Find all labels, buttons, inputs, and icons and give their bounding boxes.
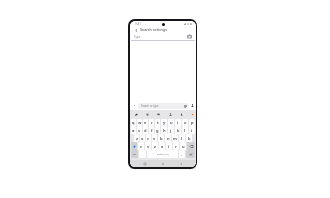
button[interactable]: Clipboard: [156, 112, 161, 117]
staticText: z: [154, 144, 156, 149]
staticText: e: [144, 120, 147, 125]
staticText: x: [141, 136, 144, 141]
button[interactable]: Settings: [179, 112, 184, 117]
staticText: g: [156, 128, 159, 133]
staticText: q: [132, 120, 135, 125]
button[interactable]: e: [143, 119, 148, 126]
button[interactable]: Search by image: [187, 34, 192, 39]
button[interactable]: More options: [191, 104, 194, 107]
button[interactable]: k: [186, 134, 192, 142]
button[interactable]: c: [138, 142, 144, 150]
staticText: h: [163, 128, 166, 133]
button[interactable]: g: [155, 126, 160, 134]
staticText: k: [188, 136, 191, 141]
staticText: Search or type: [141, 104, 159, 108]
button[interactable]: i: [166, 142, 172, 150]
button[interactable]: v: [152, 134, 157, 142]
staticText: i: [177, 120, 179, 125]
button[interactable]: x: [159, 142, 165, 150]
button[interactable]: r: [149, 119, 154, 126]
staticText: c: [147, 136, 150, 141]
staticText: l: [184, 128, 186, 133]
button[interactable]: n: [165, 134, 171, 142]
button[interactable]: x: [140, 134, 145, 142]
button[interactable]: More: [190, 112, 195, 117]
staticText: k: [177, 128, 180, 133]
button[interactable]: m: [172, 134, 178, 142]
button[interactable]: z: [152, 142, 158, 150]
staticText: t: [157, 120, 159, 125]
button[interactable]: Enter: [186, 150, 195, 158]
staticText: d: [144, 128, 147, 133]
staticText: 9:41: [135, 22, 141, 26]
staticText: c: [140, 144, 143, 149]
staticText: r: [175, 144, 177, 149]
staticText: r: [151, 120, 153, 125]
staticText: j: [170, 128, 172, 133]
staticText: u: [170, 120, 173, 125]
staticText: i: [191, 128, 193, 133]
button[interactable]: Search or type: [138, 103, 189, 109]
button[interactable]: r: [173, 142, 179, 150]
button[interactable]: p: [189, 119, 195, 126]
button[interactable]: Voice input: [168, 112, 173, 117]
staticText: p: [191, 120, 194, 125]
button[interactable]: d: [143, 126, 148, 134]
staticText: y: [163, 120, 166, 125]
button[interactable]: b: [158, 134, 164, 142]
button[interactable]: l: [179, 134, 185, 142]
staticText: !#1: [133, 153, 137, 156]
staticText: a: [132, 128, 135, 133]
button[interactable]: o: [182, 119, 188, 126]
staticText: i: [168, 144, 170, 149]
button[interactable]: Stickers: [134, 112, 139, 117]
button[interactable]: Space: [147, 150, 178, 158]
button[interactable]: a: [131, 126, 136, 134]
staticText: z: [136, 136, 138, 141]
button[interactable]: i: [175, 119, 181, 126]
button[interactable]: u: [180, 142, 186, 150]
button[interactable]: Translate: [145, 112, 150, 117]
staticText: x: [161, 144, 164, 149]
staticText: v: [147, 144, 150, 149]
staticText: o: [184, 120, 187, 125]
button[interactable]: u: [168, 119, 174, 126]
button[interactable]: y: [161, 119, 167, 126]
button[interactable]: j: [168, 126, 174, 134]
button[interactable]: v: [145, 142, 151, 150]
staticText: l: [181, 136, 183, 141]
button[interactable]: t: [155, 119, 160, 126]
staticText: s: [138, 128, 141, 133]
button[interactable]: Backspace: [187, 142, 195, 150]
button[interactable]: l: [182, 126, 188, 134]
staticText: Type: [134, 35, 141, 39]
button[interactable]: Recent apps: [142, 161, 148, 167]
button[interactable]: Back: [178, 161, 184, 167]
button[interactable]: f: [149, 126, 154, 134]
staticText: v: [153, 136, 156, 141]
button[interactable]: s: [137, 126, 142, 134]
staticText: n: [167, 136, 170, 141]
staticText: u: [182, 144, 185, 149]
staticText: w: [138, 120, 142, 125]
staticText: English (US): [157, 153, 169, 156]
staticText: .: [181, 152, 183, 157]
button[interactable]: z: [134, 134, 139, 142]
button[interactable]: c: [146, 134, 151, 142]
button[interactable]: Home: [160, 161, 166, 167]
button[interactable]: Symbols: [131, 150, 138, 158]
staticText: m: [173, 136, 177, 141]
staticText: f: [151, 128, 153, 133]
staticText: b: [160, 136, 163, 141]
button[interactable]: .: [179, 150, 185, 158]
button[interactable]: Navigate up: [132, 27, 140, 33]
button[interactable]: Shift: [131, 142, 137, 150]
button[interactable]: h: [161, 126, 167, 134]
button[interactable]: k: [175, 126, 181, 134]
button[interactable]: q: [131, 119, 136, 126]
button[interactable]: i: [189, 126, 195, 134]
button[interactable]: w: [137, 119, 142, 126]
staticText: Search settings: [140, 27, 167, 32]
